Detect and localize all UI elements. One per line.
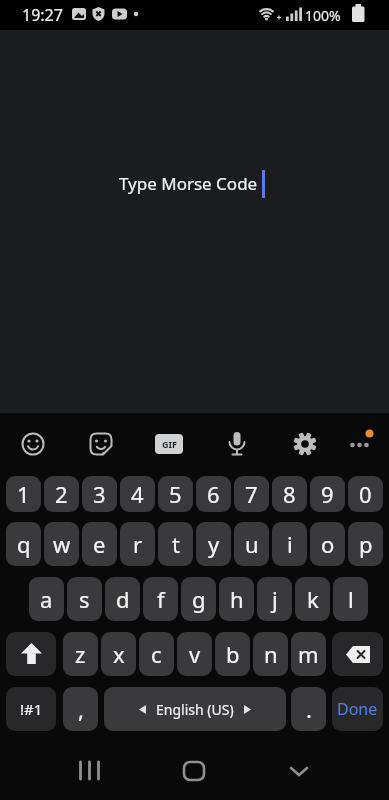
button[interactable]: g [181,577,216,621]
button[interactable] [222,429,252,459]
button[interactable]: 1 [6,476,41,512]
button[interactable]: Done [332,687,383,731]
button[interactable]: h [219,577,254,621]
staticText: i [287,529,293,559]
button[interactable]: !#1 [6,687,56,731]
staticText: z [75,639,86,669]
button[interactable]: c [139,632,174,676]
staticText: s [79,584,90,614]
staticText: r [133,529,143,559]
button[interactable]: 0 [348,476,383,512]
staticText: w [53,529,71,559]
button[interactable]: 7 [234,476,269,512]
button[interactable]: l [333,577,368,621]
button[interactable]: 5 [158,476,193,512]
staticText: !#1 [20,699,43,719]
staticText: 2 [55,479,68,509]
staticText: 4 [131,479,144,509]
staticText: 5 [169,479,182,509]
button[interactable]: m [291,632,326,676]
button[interactable] [66,750,108,790]
button[interactable] [86,429,116,459]
staticText: Done [337,698,378,720]
staticText: v [189,639,201,669]
staticText: 3 [93,479,106,509]
button[interactable]: English (US) [104,687,286,731]
button[interactable]: , [63,687,98,731]
button[interactable]: 4 [120,476,155,512]
button[interactable] [332,632,383,676]
button[interactable]: k [295,577,330,621]
button[interactable] [0,30,389,413]
staticText: d [116,584,130,614]
staticText: m [298,639,319,669]
button[interactable]: u [234,522,269,566]
staticText: o [321,529,335,559]
button[interactable] [173,750,215,790]
button[interactable]: j [257,577,292,621]
button[interactable]: a [29,577,64,621]
staticText: 0 [359,479,372,509]
staticText: . [306,694,312,724]
button[interactable]: y [196,522,231,566]
button[interactable]: x [101,632,136,676]
button[interactable] [290,429,320,459]
staticText: b [226,639,240,669]
staticText: e [93,529,106,559]
button[interactable]: f [143,577,178,621]
button[interactable]: 2 [44,476,79,512]
staticText: h [230,584,244,614]
button[interactable]: n [253,632,288,676]
button[interactable]: q [6,522,41,566]
staticText: 8 [283,479,296,509]
staticText: 1 [17,479,30,509]
staticText: p [359,529,373,559]
staticText: q [17,529,31,559]
button[interactable] [6,632,56,676]
button[interactable]: p [348,522,383,566]
staticText: c [151,639,162,669]
button[interactable]: t [158,522,193,566]
button[interactable] [345,428,377,460]
staticText: g [192,584,206,614]
button[interactable] [18,429,48,459]
staticText: y [208,529,220,559]
staticText: , [78,694,84,724]
staticText: 6 [207,479,220,509]
staticText: 7 [245,479,258,509]
button[interactable]: GIF [155,434,183,454]
button[interactable]: 8 [272,476,307,512]
staticText: 19:27 [22,4,63,26]
button[interactable]: e [82,522,117,566]
button[interactable]: o [310,522,345,566]
button[interactable] [278,750,320,790]
button[interactable]: v [177,632,212,676]
staticText: l [348,584,354,614]
button[interactable]: z [63,632,98,676]
button[interactable]: w [44,522,79,566]
button[interactable]: 9 [310,476,345,512]
staticText: English (US) [156,700,234,719]
staticText: GIF [162,438,177,450]
staticText: k [307,584,319,614]
button[interactable]: 3 [82,476,117,512]
staticText: a [40,584,53,614]
staticText: f [157,584,165,614]
button[interactable]: s [67,577,102,621]
staticText: 9 [321,479,334,509]
staticText: n [264,639,278,669]
staticText: 100% [305,6,341,25]
button[interactable]: r [120,522,155,566]
button[interactable]: d [105,577,140,621]
staticText: t [172,529,180,559]
button[interactable]: . [291,687,326,731]
staticText: x [113,639,125,669]
staticText: u [245,529,259,559]
staticText: Type Morse Code [119,172,258,195]
staticText: j [272,584,278,614]
button[interactable]: b [215,632,250,676]
button[interactable]: 6 [196,476,231,512]
button[interactable]: i [272,522,307,566]
